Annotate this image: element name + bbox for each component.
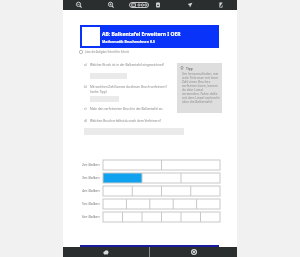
staticText: c) [84, 107, 87, 111]
staticText: Mit welchen Zahl kannst du diesen Bruch … [90, 85, 167, 94]
button[interactable]: Open document [154, 1, 162, 9]
staticText: Welchen Bruch erhältst du nach dem Verfe… [90, 119, 162, 123]
staticText: Tipp [186, 67, 193, 71]
staticText: 5er-Balken [82, 201, 100, 206]
button[interactable]: Zoom out [75, 1, 83, 9]
button[interactable]: 5-er Balken [103, 199, 220, 209]
staticText: AB: Balkentafel Erweitern I OER [102, 31, 181, 38]
staticText: d) [84, 119, 87, 123]
staticText: 3er-Balken [82, 175, 100, 180]
button[interactable]: 4-er Balken [103, 186, 220, 196]
button[interactable]: 3-er Balken [103, 173, 220, 183]
button[interactable]: Fit page, 100 percent [129, 2, 149, 8]
button[interactable]: 2-er Balken [103, 160, 220, 170]
staticText: Löse die Aufgabe Schritt für Schritt [85, 50, 129, 54]
staticText: Um herauszufinden, wie viele Teile man m… [182, 72, 220, 104]
button[interactable]: Save to cloud [63, 247, 149, 257]
button[interactable]: Info [150, 247, 237, 257]
staticText: b) [84, 85, 87, 89]
button[interactable]: 6-er Balken [103, 212, 220, 222]
button[interactable]: Zoom in [107, 1, 115, 9]
staticText: a) [84, 63, 87, 67]
staticText: 4er-Balken [82, 188, 100, 193]
staticText: 2er-Balken [82, 162, 100, 167]
staticText: Mathematik Bruchrechnen 8.5 [102, 39, 155, 44]
staticText: Welcher Bruch ist in der Balkentafel ein… [90, 63, 165, 67]
staticText: Male den verfeinerten Bruch in der Balke… [90, 107, 164, 111]
button[interactable]: Annotate [217, 1, 225, 9]
staticText: 6er-Balken [82, 214, 100, 219]
button[interactable]: Share [186, 1, 194, 9]
